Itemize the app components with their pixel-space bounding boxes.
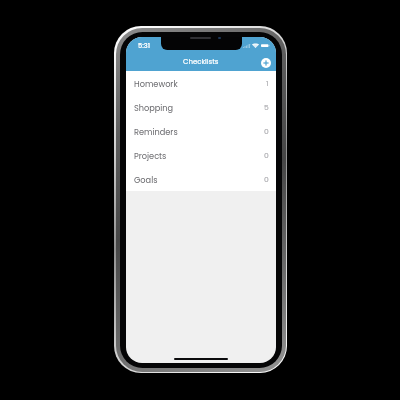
staticText: 0: [264, 150, 269, 161]
staticText: 0: [264, 126, 269, 137]
button[interactable]: Projects: [126, 143, 276, 167]
staticText: 5:31: [138, 41, 151, 50]
staticText: Goals: [134, 174, 158, 185]
staticText: 1: [266, 78, 269, 89]
staticText: Projects: [134, 150, 167, 161]
staticText: Reminders: [134, 126, 178, 137]
button[interactable]: Homework: [126, 71, 276, 95]
staticText: Homework: [134, 78, 178, 89]
button[interactable]: Add checklist: [259, 56, 272, 69]
button[interactable]: Reminders: [126, 119, 276, 143]
staticText: 0: [264, 174, 269, 185]
staticText: Checklists: [183, 57, 219, 67]
staticText: Shopping: [134, 102, 174, 113]
staticText: 5: [264, 102, 269, 113]
button[interactable]: Goals: [126, 167, 276, 191]
button[interactable]: Shopping: [126, 95, 276, 119]
